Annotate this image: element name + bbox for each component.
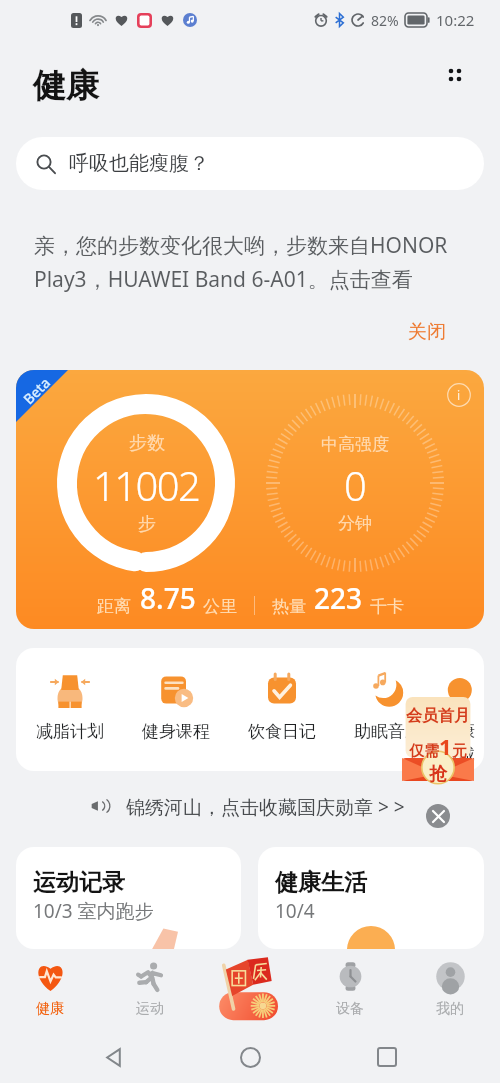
button[interactable]: 饮食日记 (229, 670, 335, 742)
staticText: 锦绣河山，点击收藏国庆勋章 > > (126, 794, 405, 818)
staticText: 10/4 (275, 898, 315, 924)
staticText: 10/3 室内跑步 (33, 898, 154, 924)
button[interactable]: Info (447, 383, 471, 407)
staticText: 0 (344, 458, 367, 512)
button[interactable]: Recents (363, 1033, 411, 1081)
staticText: 分钟 (338, 513, 372, 534)
button[interactable]: 运动记录 (16, 847, 241, 949)
button[interactable]: 健康 (0, 949, 100, 1030)
staticText: 11002 (93, 458, 200, 512)
button[interactable]: National Day event (200, 949, 300, 1030)
staticText: 设备 (336, 1000, 364, 1018)
button[interactable]: 健康商城 (441, 670, 484, 765)
staticText: 健身课程 (142, 721, 210, 742)
button[interactable]: 我的 (400, 949, 500, 1030)
staticText: 减脂计划 (36, 721, 104, 742)
button[interactable]: 减脂计划 (17, 670, 123, 742)
staticText: 82% (371, 11, 399, 30)
button[interactable]: Home (226, 1033, 274, 1081)
staticText: 抢 (429, 763, 447, 786)
button[interactable]: Membership promo, 1 yuan first month (402, 694, 474, 781)
staticText: 饮食日记 (248, 721, 316, 742)
staticText: 223 (314, 579, 363, 617)
staticText: 10:22 (436, 10, 475, 30)
staticText: 会员首月 (406, 706, 470, 726)
staticText: i (457, 387, 461, 403)
button[interactable]: 运动 (100, 949, 200, 1030)
staticText: 亲，您的步数变化很大哟，步数来自HONOR (34, 231, 448, 260)
staticText: 健康 (36, 1000, 64, 1018)
staticText: 呼吸也能瘦腹？ (69, 151, 209, 176)
button[interactable]: 关闭 (404, 318, 450, 346)
button[interactable]: Back (89, 1033, 137, 1081)
staticText: 健康 (33, 65, 99, 107)
staticText: Play3，HUAWEI Band 6-A01。点击查看 (34, 265, 413, 294)
staticText: 热量 (272, 596, 306, 617)
staticText: 元 (452, 742, 467, 761)
button[interactable]: More options (434, 54, 476, 96)
staticText: 我的 (436, 1000, 464, 1018)
staticText: Beta (19, 373, 54, 408)
staticText: 健康生活 (275, 868, 367, 897)
staticText: 中高强度 (321, 434, 389, 455)
staticText: 公里 (203, 596, 237, 617)
staticText: 步数 (129, 432, 165, 455)
staticText: 1 (439, 731, 452, 761)
staticText: 助眠音乐 (354, 721, 422, 742)
staticText: 关闭 (408, 320, 446, 344)
button[interactable]: 设备 (300, 949, 400, 1030)
staticText: 千卡 (370, 596, 404, 617)
staticText: 8.75 (140, 579, 196, 617)
staticText: 仅需 (409, 742, 439, 761)
staticText: 运动 (136, 1000, 164, 1018)
button[interactable]: 健身课程 (123, 670, 229, 742)
button[interactable]: 呼吸也能瘦腹？ (16, 137, 484, 190)
button[interactable]: 助眠音乐 (335, 670, 441, 742)
button[interactable]: 健康生活 (258, 847, 484, 949)
staticText: 运动记录 (33, 868, 125, 897)
staticText: 距离 (97, 596, 131, 617)
button[interactable]: Beta (16, 370, 484, 629)
staticText: 步 (138, 513, 156, 536)
staticText: 健康商城 (441, 721, 484, 765)
button[interactable]: Close (426, 804, 450, 828)
